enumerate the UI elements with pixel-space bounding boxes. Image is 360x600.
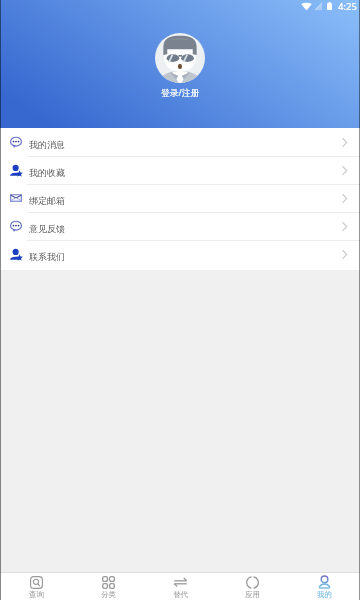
button[interactable]: 查询 (0, 573, 72, 600)
staticText: 分类 (101, 590, 116, 599)
staticText: 绑定邮箱 (29, 195, 65, 206)
staticText: 替代 (173, 590, 188, 599)
staticText: 我的消息 (29, 139, 65, 150)
button[interactable]: 我的 (288, 573, 360, 600)
button[interactable]: 应用 (216, 573, 288, 600)
button[interactable]: 意见反馈 (0, 212, 360, 240)
button[interactable]: 绑定邮箱 (0, 184, 360, 212)
button[interactable]: 联系我们 (0, 240, 360, 268)
staticText: 意见反馈 (29, 223, 65, 234)
staticText: 查询 (29, 590, 44, 599)
button[interactable]: Avatar (155, 33, 205, 83)
staticText: 联系我们 (29, 251, 65, 262)
button[interactable]: 我的收藏 (0, 156, 360, 184)
staticText: 我的收藏 (29, 167, 65, 178)
staticText: 应用 (245, 590, 260, 599)
staticText: 我的 (317, 590, 332, 599)
staticText: 4:25 (338, 0, 357, 12)
staticText: 登录/注册 (161, 87, 200, 99)
button[interactable]: 我的消息 (0, 128, 360, 156)
button[interactable]: 替代 (144, 573, 216, 600)
button[interactable]: 分类 (72, 573, 144, 600)
